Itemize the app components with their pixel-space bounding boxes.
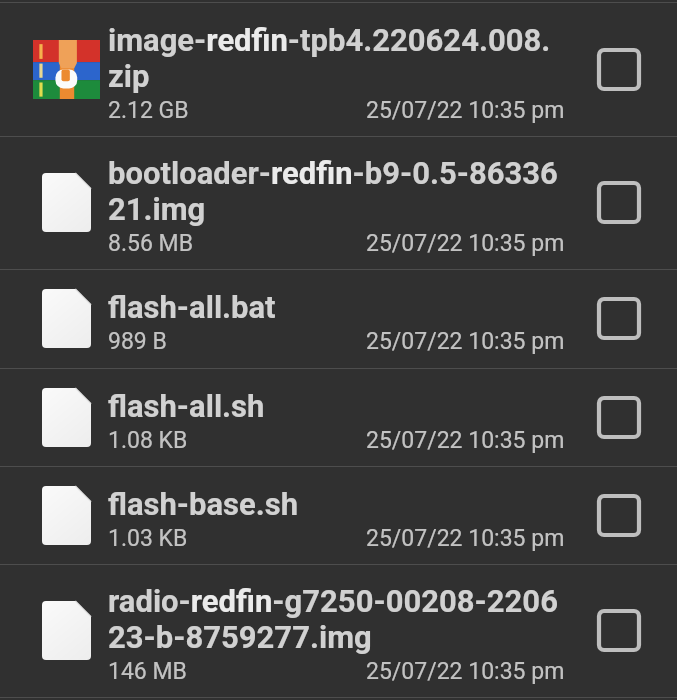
button[interactable]: image-redfin-tpb4.220624.008. bbox=[0, 3, 677, 136]
staticText: bootloader-redfin-b9-0.5-86336 bbox=[108, 155, 558, 191]
button[interactable]: Select file bbox=[591, 41, 647, 97]
staticText: 25/07/22 10:35 pm bbox=[366, 427, 565, 454]
staticText: flash-all.sh bbox=[108, 388, 265, 424]
staticText: zip bbox=[108, 58, 150, 94]
staticText: 25/07/22 10:35 pm bbox=[366, 97, 565, 124]
staticText: radio-redfin-g7250-00208-2206 bbox=[108, 583, 558, 619]
button[interactable]: flash-all.sh bbox=[0, 369, 677, 466]
staticText: 2.12 GB bbox=[108, 97, 189, 124]
staticText: 25/07/22 10:35 pm bbox=[366, 658, 565, 685]
staticText: flash-base.sh bbox=[108, 486, 299, 522]
button[interactable]: flash-all.bat bbox=[0, 270, 677, 368]
staticText: 8.56 MB bbox=[108, 230, 193, 257]
staticText: 989 B bbox=[108, 328, 167, 355]
button[interactable]: flash-base.sh bbox=[0, 467, 677, 564]
staticText: image-redfin-tpb4.220624.008. bbox=[108, 22, 551, 58]
staticText: 146 MB bbox=[108, 658, 187, 685]
staticText: 1.03 KB bbox=[108, 525, 188, 552]
staticText: 25/07/22 10:35 pm bbox=[366, 525, 565, 552]
staticText: 1.08 KB bbox=[108, 427, 188, 454]
button[interactable]: Select file bbox=[591, 602, 647, 658]
button[interactable]: Select file bbox=[591, 290, 647, 346]
staticText: 25/07/22 10:35 pm bbox=[366, 328, 565, 355]
button[interactable]: radio-redfin-g7250-00208-2206 bbox=[0, 565, 677, 697]
staticText: 23-b-8759277.img bbox=[108, 619, 372, 655]
button[interactable]: Select file bbox=[591, 389, 647, 445]
staticText: 25/07/22 10:35 pm bbox=[366, 230, 565, 257]
staticText: flash-all.bat bbox=[108, 289, 276, 325]
button[interactable]: Select file bbox=[591, 174, 647, 230]
button[interactable]: Select file bbox=[591, 487, 647, 543]
staticText: 21.img bbox=[108, 191, 206, 227]
button[interactable]: bootloader-redfin-b9-0.5-86336 bbox=[0, 137, 677, 269]
